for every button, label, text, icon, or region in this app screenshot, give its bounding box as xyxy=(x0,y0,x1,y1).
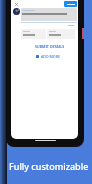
button[interactable]: ADD MORE xyxy=(36,54,60,59)
staticText: Fully customizable xyxy=(9,160,89,172)
button[interactable] xyxy=(64,1,77,7)
staticText: ADD MORE xyxy=(41,54,60,59)
button[interactable]: Close xyxy=(13,1,20,8)
button[interactable] xyxy=(21,29,46,39)
staticText: SUBMIT DETAILS xyxy=(35,44,65,49)
button[interactable] xyxy=(47,29,75,39)
button[interactable]: SUBMIT DETAILS xyxy=(35,44,65,49)
